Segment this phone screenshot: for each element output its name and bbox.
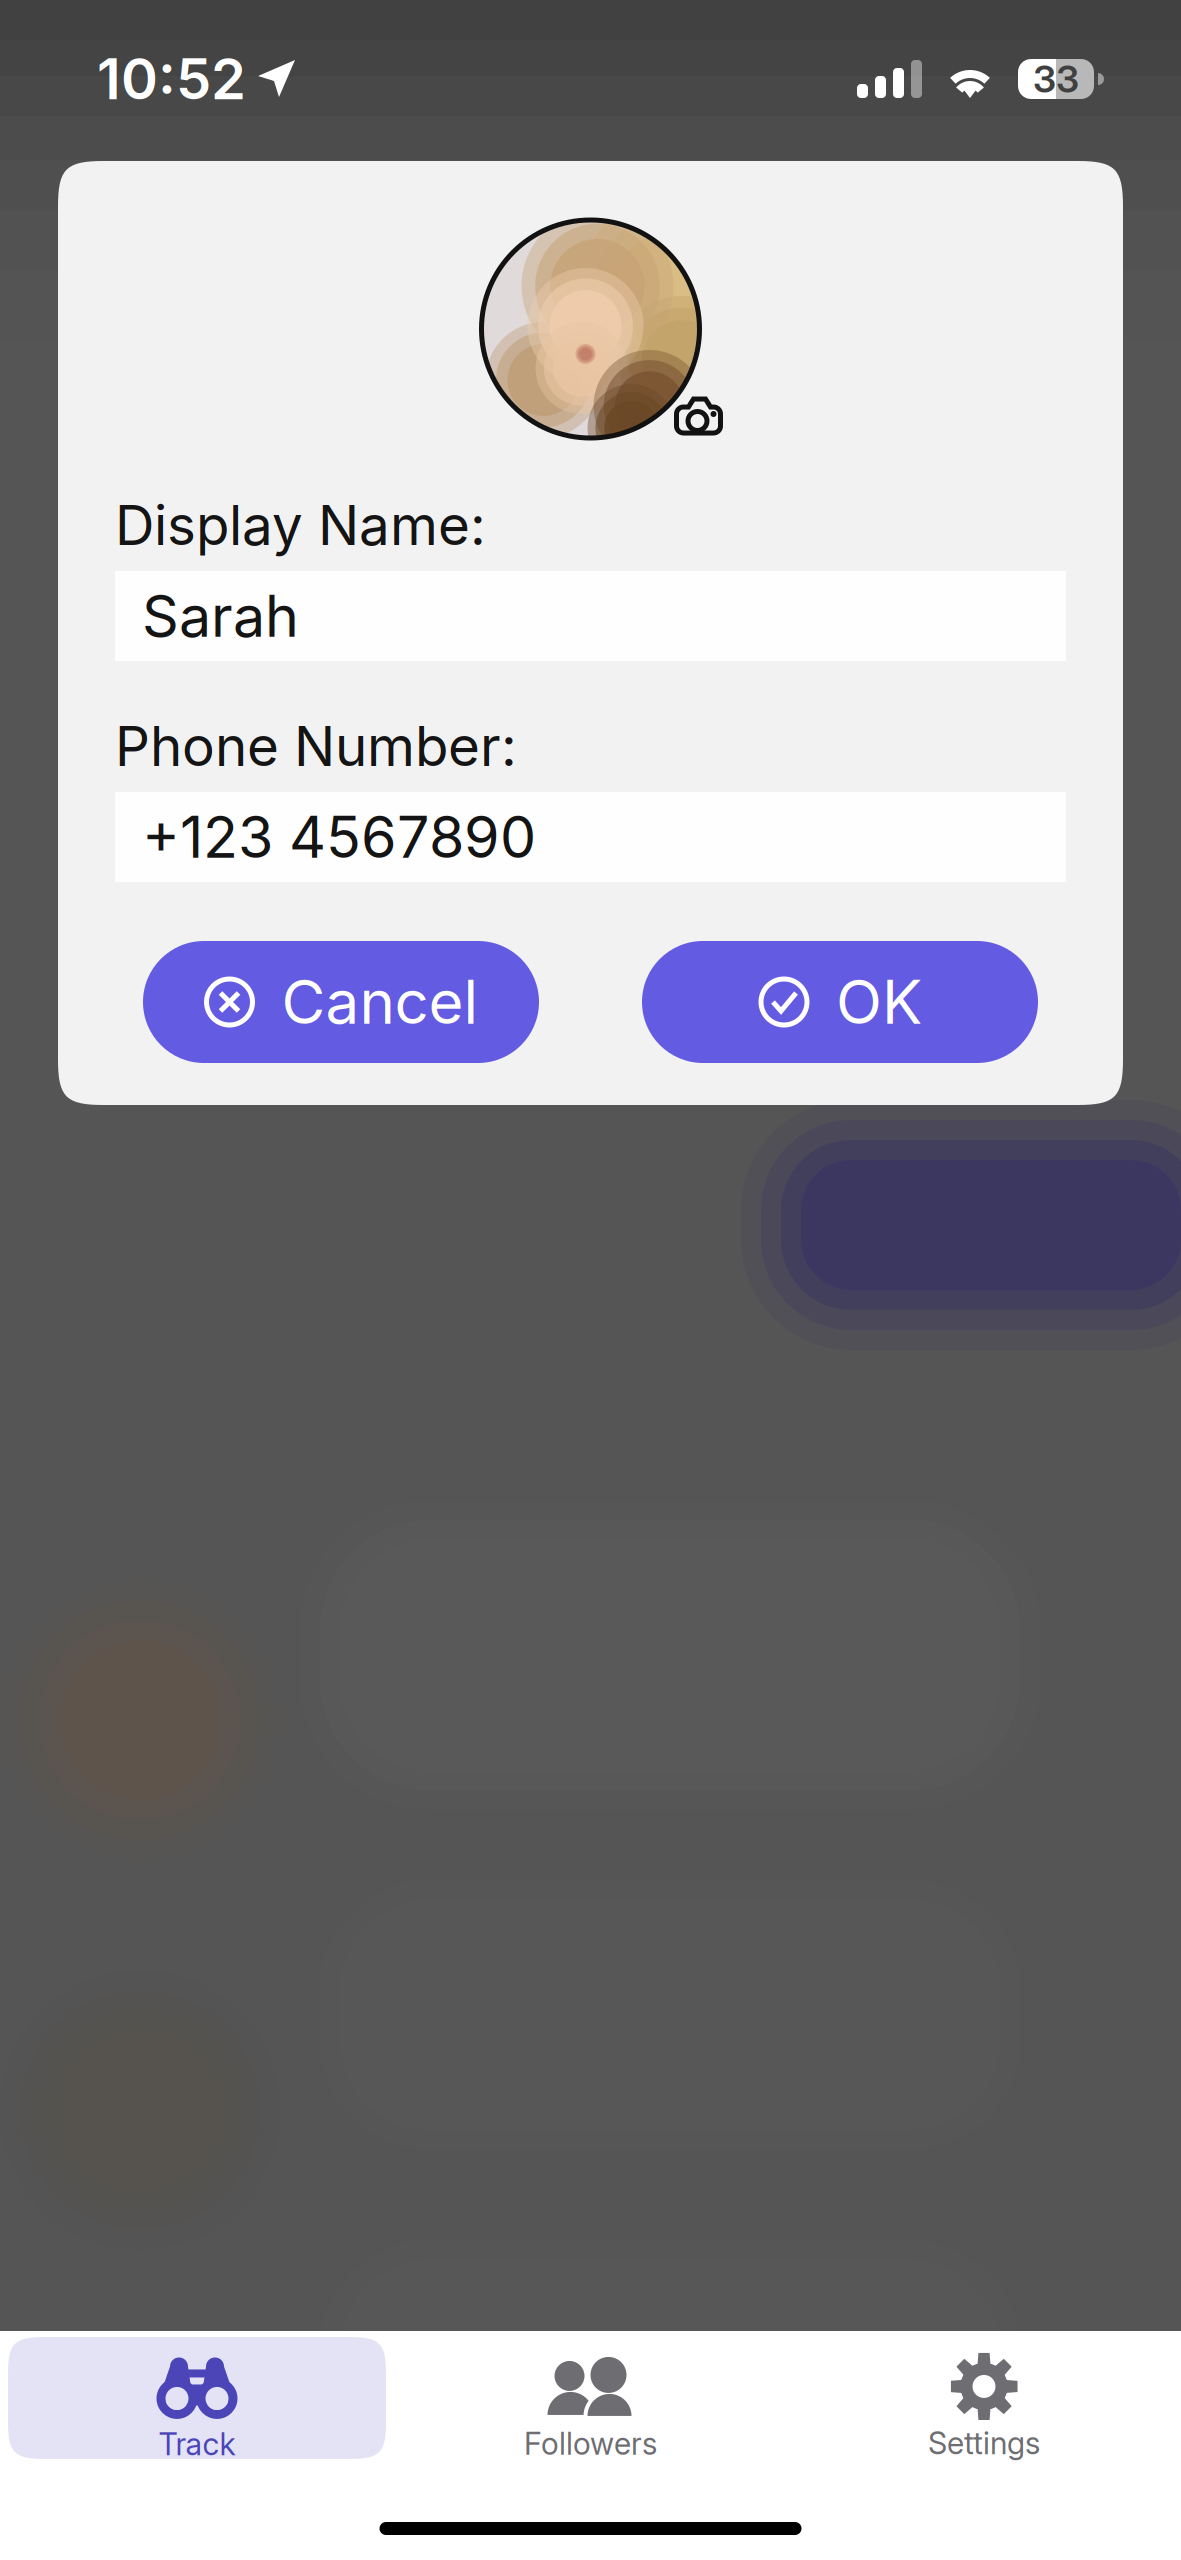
staticText: Cancel xyxy=(281,966,478,1038)
staticText: Track xyxy=(158,2425,235,2462)
staticText: 10:52 xyxy=(97,45,246,113)
staticText: Sarah xyxy=(142,581,299,651)
staticText: OK xyxy=(836,966,922,1038)
staticText: +123 4567890 xyxy=(142,802,536,872)
staticText: Display Name: xyxy=(115,492,486,558)
button[interactable]: Track xyxy=(8,2337,386,2459)
button[interactable]: OK xyxy=(642,941,1038,1063)
button[interactable]: Cancel xyxy=(143,941,539,1063)
staticText: Settings xyxy=(928,2424,1040,2461)
staticText: Phone Number: xyxy=(115,713,517,779)
staticText: Followers xyxy=(524,2425,657,2462)
staticText: 33 xyxy=(1033,56,1079,102)
button[interactable]: Followers xyxy=(386,2337,779,2459)
button[interactable]: Settings xyxy=(779,2337,1173,2459)
